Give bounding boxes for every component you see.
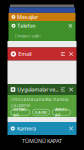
staticText: Mesajlar xyxy=(17,13,38,20)
button[interactable]: AYARLAR xyxy=(52,109,70,115)
button[interactable]: Telefon xyxy=(8,21,75,41)
staticText: Cevapsız çağrı xyxy=(14,33,40,38)
staticText: ÇALIŞIYOR xyxy=(11,103,30,108)
staticText: Telefon xyxy=(17,22,35,29)
button[interactable]: DETAYLAR xyxy=(11,109,30,115)
button[interactable]: Uygulamalar ve... xyxy=(7,84,76,95)
staticText: TÜMÜNÜ KAPAT xyxy=(22,137,62,144)
staticText: DETAYLAR xyxy=(13,107,27,117)
staticText: Kamera xyxy=(17,125,36,132)
staticText: UYGULAMALAR ARKA PLANDA xyxy=(11,97,69,102)
button[interactable]: Mesajlar xyxy=(8,13,75,21)
staticText: AYARLAR xyxy=(55,107,68,117)
button[interactable]: KAPAT xyxy=(32,109,50,115)
button[interactable]: TÜMÜNÜ KAPAT xyxy=(16,135,68,146)
staticText: Email xyxy=(18,50,31,58)
button[interactable]: Email xyxy=(7,47,76,60)
staticText: Uygulamalar ve... xyxy=(17,86,58,93)
button[interactable]: Kamera xyxy=(7,122,76,135)
staticText: KAPAT xyxy=(35,110,47,115)
